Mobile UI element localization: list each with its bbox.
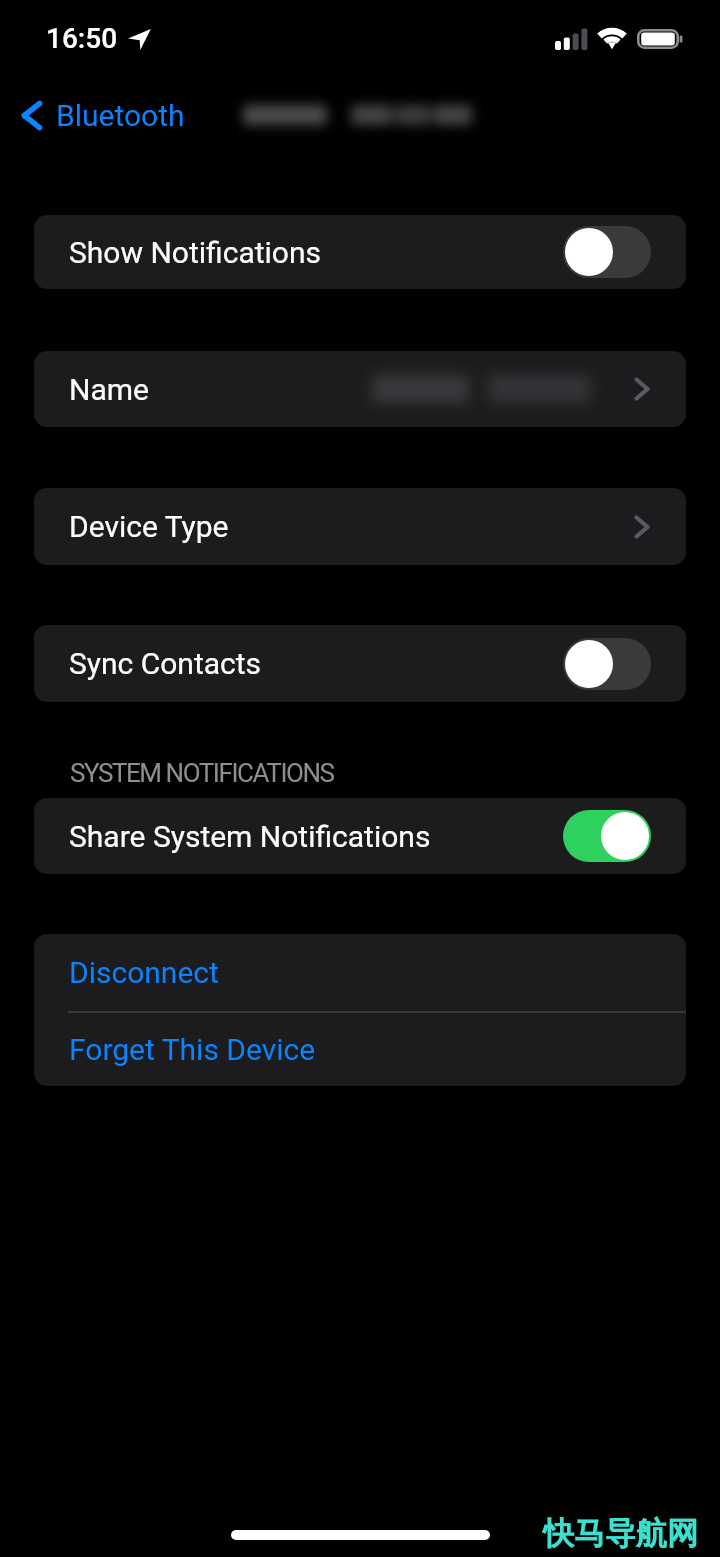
button[interactable]: Sync Contacts — [34, 625, 686, 702]
staticText: Name — [69, 372, 149, 407]
staticText: Share System Notifications — [69, 819, 431, 854]
button[interactable]: Name — [34, 351, 686, 427]
staticText: 快马导航网 — [543, 1514, 698, 1553]
button[interactable]: Show Notifications — [34, 215, 686, 289]
staticText: Sync Contacts — [69, 646, 262, 681]
button[interactable]: Device Type — [34, 488, 686, 565]
staticText: Show Notifications — [69, 235, 321, 270]
button[interactable]: Switch on — [563, 810, 651, 862]
staticText: 16:50 — [46, 22, 118, 55]
button[interactable]: Switch off — [563, 638, 651, 690]
staticText: Disconnect — [69, 955, 219, 990]
button[interactable]: Disconnect — [34, 934, 686, 1011]
button[interactable]: Switch off — [563, 226, 651, 278]
button[interactable]: Bluetooth — [22, 98, 185, 133]
staticText: Forget This Device — [69, 1032, 316, 1067]
staticText: SYSTEM NOTIFICATIONS — [70, 758, 334, 788]
staticText: Device Type — [69, 509, 229, 544]
staticText: Bluetooth — [56, 98, 185, 133]
button[interactable]: Forget This Device — [34, 1013, 686, 1086]
button[interactable]: Share System Notifications — [34, 798, 686, 874]
